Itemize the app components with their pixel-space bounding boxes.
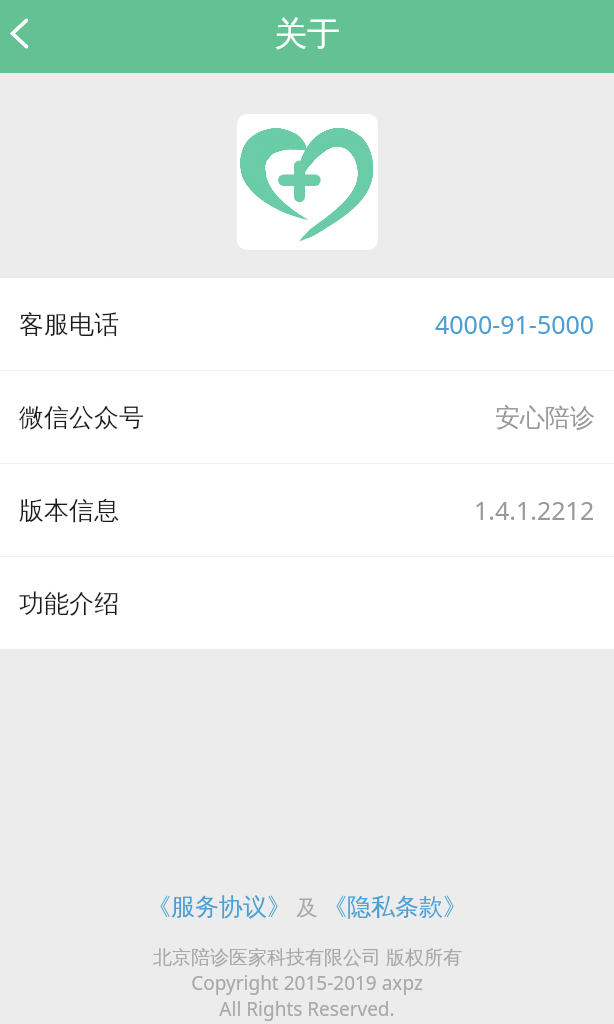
staticText: 微信公众号 xyxy=(19,402,144,433)
staticText: 北京陪诊医家科技有限公司 版权所有 xyxy=(153,944,462,970)
staticText: 功能介绍 xyxy=(19,588,119,619)
staticText: 客服电话 xyxy=(19,309,119,340)
staticText: 《隐私条款》 xyxy=(323,892,467,922)
staticText: 安心陪诊 xyxy=(495,402,595,433)
button[interactable]: 《服务协议》 xyxy=(147,892,291,922)
button[interactable]: 版本信息 xyxy=(0,464,614,556)
staticText: Copyright 2015-2019 axpz xyxy=(191,970,423,996)
staticText: 关于 xyxy=(274,13,340,55)
button[interactable]: Back xyxy=(0,5,39,61)
staticText: 及 xyxy=(291,893,323,922)
staticText: 《服务协议》 xyxy=(147,892,291,922)
button[interactable]: 微信公众号 xyxy=(0,371,614,463)
staticText: All Rights Reserved. xyxy=(219,996,395,1022)
button[interactable]: 功能介绍 xyxy=(0,557,614,649)
staticText: 1.4.1.2212 xyxy=(474,493,595,527)
staticText: 4000-91-5000 xyxy=(435,307,595,341)
staticText: 版本信息 xyxy=(19,495,119,526)
button[interactable]: 《隐私条款》 xyxy=(323,892,467,922)
button[interactable]: 客服电话 xyxy=(0,278,614,370)
